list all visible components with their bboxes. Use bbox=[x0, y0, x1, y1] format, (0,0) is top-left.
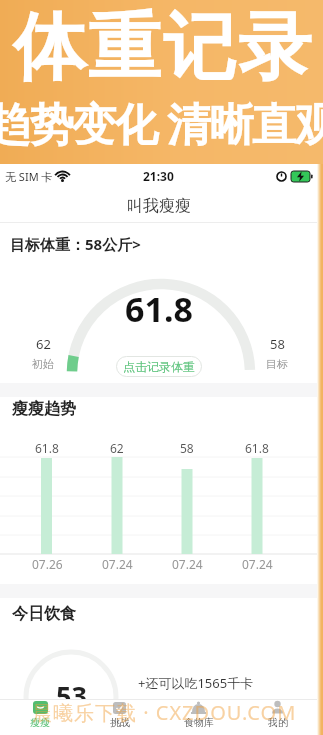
staticText: 07.24 bbox=[242, 556, 273, 572]
staticText: 61.8 bbox=[35, 440, 59, 456]
staticText: 58 bbox=[270, 335, 285, 353]
button[interactable]: 目标体重：58公斤> bbox=[0, 223, 317, 265]
staticText: 目标体重：58公斤> bbox=[10, 234, 141, 254]
staticText: +还可以吃1565千卡 bbox=[138, 674, 254, 692]
staticText: 今日饮食 bbox=[12, 604, 76, 624]
staticText: 趋势变化 清晰直观 bbox=[0, 93, 323, 153]
staticText: 62 bbox=[110, 440, 124, 456]
button[interactable]: 点击记录体重 bbox=[116, 356, 202, 377]
staticText: 晨曦乐下载 · CXZDOU.COM bbox=[32, 699, 297, 726]
button[interactable]: 食物库 bbox=[159, 700, 238, 735]
staticText: 61.8 bbox=[125, 286, 193, 332]
staticText: 07.24 bbox=[172, 556, 203, 572]
staticText: 无 SIM 卡 bbox=[5, 169, 53, 184]
staticText: 初始 bbox=[32, 357, 54, 371]
staticText: 目标 bbox=[266, 357, 288, 371]
button[interactable]: 61.8 bbox=[0, 265, 317, 383]
staticText: 挑战 bbox=[110, 716, 130, 729]
staticText: 61.8 bbox=[245, 440, 269, 456]
staticText: 我的 bbox=[268, 716, 288, 729]
button[interactable]: 我的 bbox=[238, 700, 317, 735]
staticText: 07.24 bbox=[102, 556, 133, 572]
staticText: 瘦瘦 bbox=[30, 716, 50, 729]
staticText: 62 bbox=[36, 335, 51, 353]
button[interactable]: 瘦瘦 bbox=[0, 700, 80, 735]
staticText: 瘦瘦趋势 bbox=[12, 399, 76, 419]
staticText: 58 bbox=[180, 440, 194, 456]
staticText: 21:30 bbox=[143, 168, 174, 184]
staticText: 叫我瘦瘦 bbox=[127, 196, 191, 216]
staticText: 食物库 bbox=[184, 716, 214, 729]
staticText: 07.26 bbox=[32, 556, 63, 572]
staticText: 体重记录 bbox=[12, 2, 312, 94]
staticText: 点击记录体重 bbox=[123, 359, 195, 374]
button[interactable]: 挑战 bbox=[80, 700, 159, 735]
staticText: 53 bbox=[56, 677, 87, 714]
